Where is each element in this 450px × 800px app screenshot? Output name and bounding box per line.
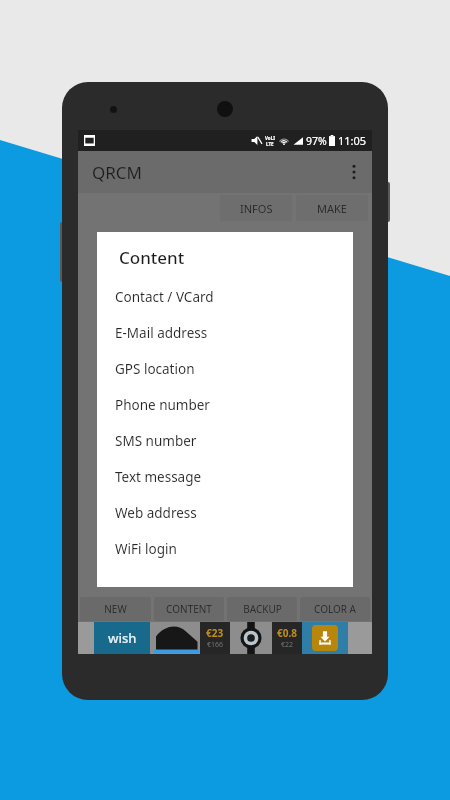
- staticText: LTE: [266, 141, 274, 147]
- button[interactable]: CONTENT: [154, 597, 224, 621]
- staticText: QRCM: [92, 161, 143, 184]
- button[interactable]: Web address: [97, 495, 353, 531]
- staticText: Text message: [115, 468, 202, 486]
- button[interactable]: Advertisement: [78, 622, 372, 654]
- staticText: VoLI: [265, 135, 275, 141]
- staticText: Content: [119, 246, 185, 269]
- staticText: 97%: [306, 134, 327, 148]
- button[interactable]: Contact / VCard: [97, 279, 353, 315]
- button[interactable]: MAKE: [296, 195, 368, 221]
- staticText: NEW: [104, 602, 127, 616]
- staticText: 11:05: [338, 133, 367, 148]
- button[interactable]: INFOS: [220, 195, 292, 221]
- staticText: SMS number: [115, 432, 197, 450]
- button[interactable]: GPS location: [97, 351, 353, 387]
- staticText: WiFi login: [115, 540, 177, 558]
- staticText: Phone number: [115, 396, 210, 414]
- button[interactable]: Phone number: [97, 387, 353, 423]
- staticText: wish: [108, 629, 137, 647]
- button[interactable]: Text message: [97, 459, 353, 495]
- staticText: GPS location: [115, 360, 195, 378]
- staticText: CONTENT: [166, 602, 212, 616]
- button[interactable]: Install: [312, 625, 338, 651]
- staticText: €166: [207, 640, 224, 650]
- button[interactable]: COLOR A: [300, 597, 370, 621]
- button[interactable]: E-Mail address: [97, 315, 353, 351]
- staticText: BACKUP: [243, 602, 282, 616]
- staticText: Web address: [115, 504, 197, 522]
- staticText: €0.8: [277, 626, 297, 640]
- staticText: INFOS: [240, 201, 273, 216]
- button[interactable]: More options: [336, 154, 372, 190]
- staticText: E-Mail address: [115, 324, 208, 342]
- button[interactable]: SMS number: [97, 423, 353, 459]
- button[interactable]: WiFi login: [97, 531, 353, 567]
- button[interactable]: BACKUP: [227, 597, 297, 621]
- staticText: €23: [206, 626, 224, 640]
- staticText: €22: [281, 640, 294, 650]
- staticText: COLOR A: [314, 602, 356, 616]
- staticText: Contact / VCard: [115, 288, 214, 306]
- button[interactable]: NEW: [80, 597, 151, 621]
- staticText: MAKE: [317, 201, 347, 216]
